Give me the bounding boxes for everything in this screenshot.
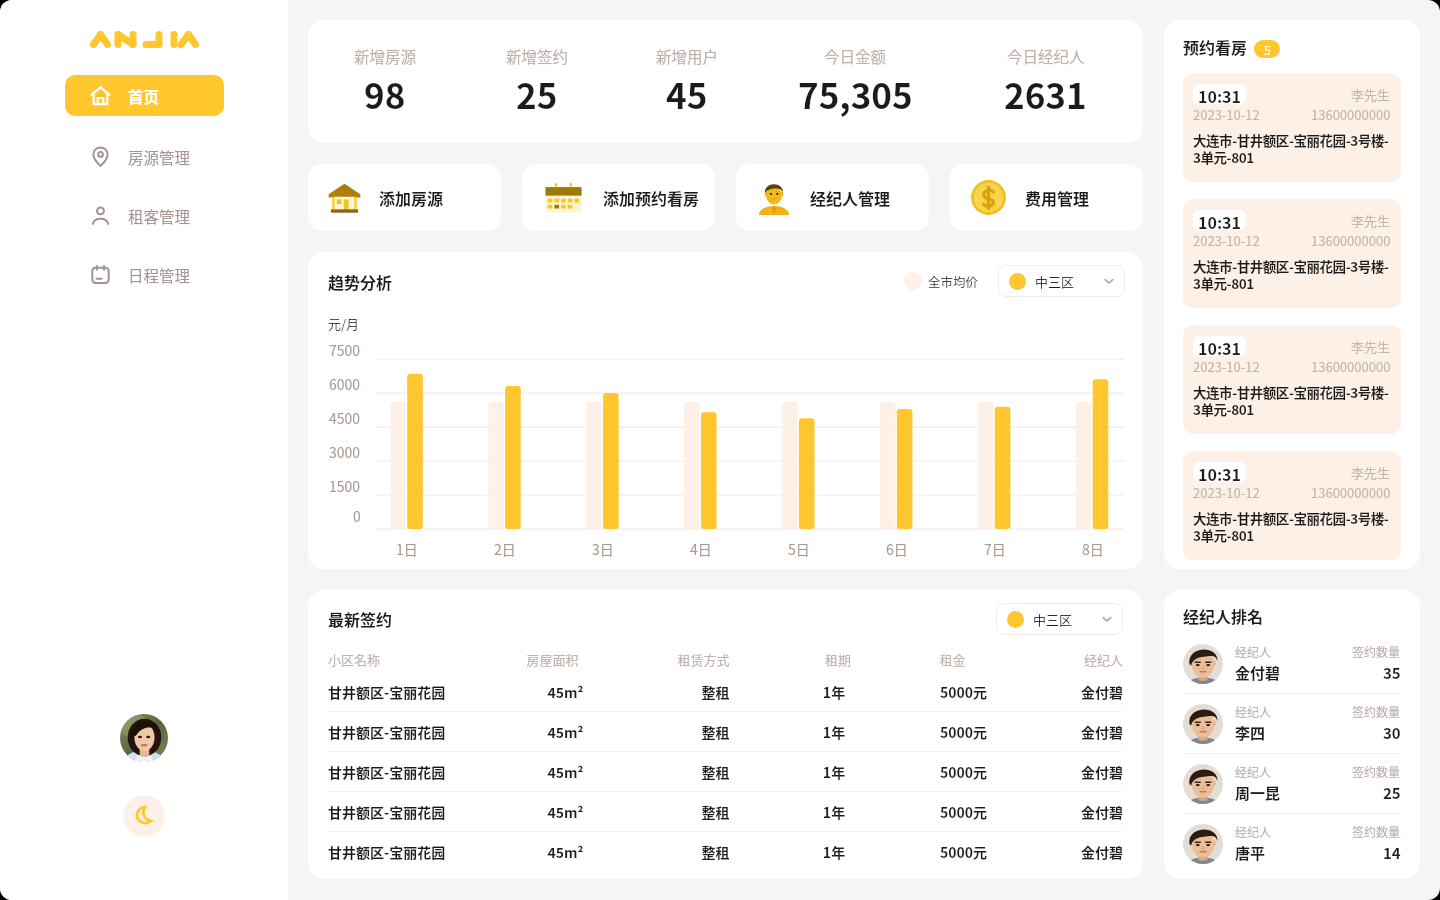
button[interactable]: 中三区: [998, 265, 1125, 297]
staticText: 25: [1383, 782, 1401, 804]
staticText: 大连市-甘井额区-宝丽花园-3号楼- 3单元-801: [1193, 382, 1389, 419]
staticText: 大连市-甘井额区-宝丽花园-3号楼- 3单元-801: [1193, 130, 1389, 167]
staticText: 2023-10-12: [1193, 357, 1260, 376]
staticText: 5: [1264, 41, 1271, 58]
staticText: 整租: [625, 842, 806, 862]
staticText: 小区名称: [328, 650, 507, 669]
button[interactable]: 费用管理: [950, 164, 1143, 231]
staticText: 今日金额: [824, 45, 887, 67]
staticText: 甘井额区-宝丽花园: [328, 802, 506, 822]
staticText: 李四: [1235, 722, 1266, 744]
staticText: 45m²: [506, 682, 625, 702]
button[interactable]: 租客管理: [65, 195, 224, 236]
staticText: 0: [353, 506, 361, 526]
button[interactable]: Profile: [120, 714, 168, 762]
staticText: 75,305: [798, 68, 913, 119]
staticText: 经纪人: [1235, 763, 1272, 780]
button[interactable]: 经纪人: [1183, 814, 1401, 873]
staticText: 租赁方式: [598, 650, 809, 669]
staticText: 45m²: [506, 802, 625, 822]
staticText: 签约数量: [1352, 763, 1401, 780]
staticText: 李先生: [1351, 463, 1391, 482]
staticText: 金付碧: [1065, 842, 1123, 862]
staticText: 经纪人: [1235, 703, 1272, 720]
staticText: 整租: [625, 682, 806, 702]
staticText: 1500: [329, 476, 361, 496]
staticText: 周一昆: [1235, 782, 1281, 804]
button[interactable]: 10:31: [1183, 325, 1401, 434]
staticText: 1年: [806, 722, 862, 742]
staticText: 4500: [329, 408, 361, 428]
staticText: 45m²: [506, 842, 625, 862]
staticText: 今日经纪人: [1007, 45, 1085, 67]
staticText: 5000元: [862, 722, 1065, 742]
button[interactable]: Dark mode: [123, 795, 165, 837]
staticText: 整租: [625, 722, 806, 742]
button[interactable]: 经纪人: [1183, 634, 1401, 693]
staticText: 最新签约: [328, 607, 393, 630]
staticText: 大连市-甘井额区-宝丽花园-3号楼- 3单元-801: [1193, 508, 1389, 545]
staticText: 全市均价: [928, 272, 979, 290]
staticText: 1日: [396, 539, 418, 559]
staticText: 4日: [690, 539, 712, 559]
button[interactable]: 添加预约看房: [522, 164, 715, 231]
staticText: 30: [1383, 722, 1401, 744]
staticText: 10:31: [1198, 210, 1241, 230]
staticText: 1年: [806, 762, 862, 782]
staticText: 5日: [788, 539, 810, 559]
staticText: 唐平: [1235, 842, 1266, 864]
staticText: 5000元: [862, 682, 1065, 702]
staticText: 签约数量: [1352, 703, 1401, 720]
button[interactable]: 添加房源: [308, 164, 501, 231]
button[interactable]: 首页: [65, 75, 224, 116]
staticText: 签约数量: [1352, 823, 1401, 840]
button[interactable]: 房源管理: [65, 136, 224, 177]
button[interactable]: 经纪人管理: [736, 164, 929, 231]
button[interactable]: 日程管理: [65, 254, 224, 295]
staticText: 首页: [128, 85, 160, 107]
staticText: 甘井额区-宝丽花园: [328, 842, 506, 862]
staticText: 2631: [1004, 68, 1087, 119]
staticText: 租金: [867, 650, 1038, 669]
staticText: 2日: [494, 539, 516, 559]
staticText: 整租: [625, 802, 806, 822]
staticText: 5000元: [862, 802, 1065, 822]
staticText: 经纪人: [1038, 650, 1123, 669]
button[interactable]: 10:31: [1183, 73, 1401, 182]
staticText: 13600000000: [1311, 231, 1391, 250]
staticText: 甘井额区-宝丽花园: [328, 682, 506, 702]
staticText: 李先生: [1351, 85, 1391, 104]
staticText: 3日: [592, 539, 614, 559]
staticText: 25: [516, 68, 558, 119]
staticText: 经纪人排名: [1183, 604, 1264, 627]
button[interactable]: 10:31: [1183, 199, 1401, 308]
staticText: 金付碧: [1065, 762, 1123, 782]
staticText: 14: [1383, 842, 1401, 864]
staticText: 5000元: [862, 842, 1065, 862]
button[interactable]: 经纪人: [1183, 694, 1401, 753]
staticText: 金付碧: [1065, 682, 1123, 702]
staticText: 1年: [806, 842, 862, 862]
button[interactable]: 中三区: [996, 603, 1123, 635]
staticText: 趋势分析: [328, 270, 393, 293]
staticText: 13600000000: [1311, 105, 1391, 124]
staticText: 预约看房: [1183, 35, 1248, 58]
staticText: 6日: [886, 539, 908, 559]
staticText: 甘井额区-宝丽花园: [328, 762, 506, 782]
staticText: 添加房源: [379, 186, 444, 209]
staticText: 租客管理: [128, 205, 191, 227]
staticText: 35: [1383, 662, 1401, 684]
staticText: 45: [666, 68, 708, 119]
staticText: 5000元: [862, 762, 1065, 782]
staticText: 签约数量: [1352, 643, 1401, 660]
button[interactable]: 10:31: [1183, 451, 1401, 560]
staticText: 1年: [806, 802, 862, 822]
staticText: 经纪人: [1235, 823, 1272, 840]
staticText: 中三区: [1033, 610, 1073, 629]
staticText: 6000: [329, 374, 361, 394]
staticText: 房源管理: [128, 146, 191, 168]
staticText: 整租: [625, 762, 806, 782]
button[interactable]: 经纪人: [1183, 754, 1401, 813]
staticText: 13600000000: [1311, 483, 1391, 502]
staticText: 2023-10-12: [1193, 231, 1260, 250]
